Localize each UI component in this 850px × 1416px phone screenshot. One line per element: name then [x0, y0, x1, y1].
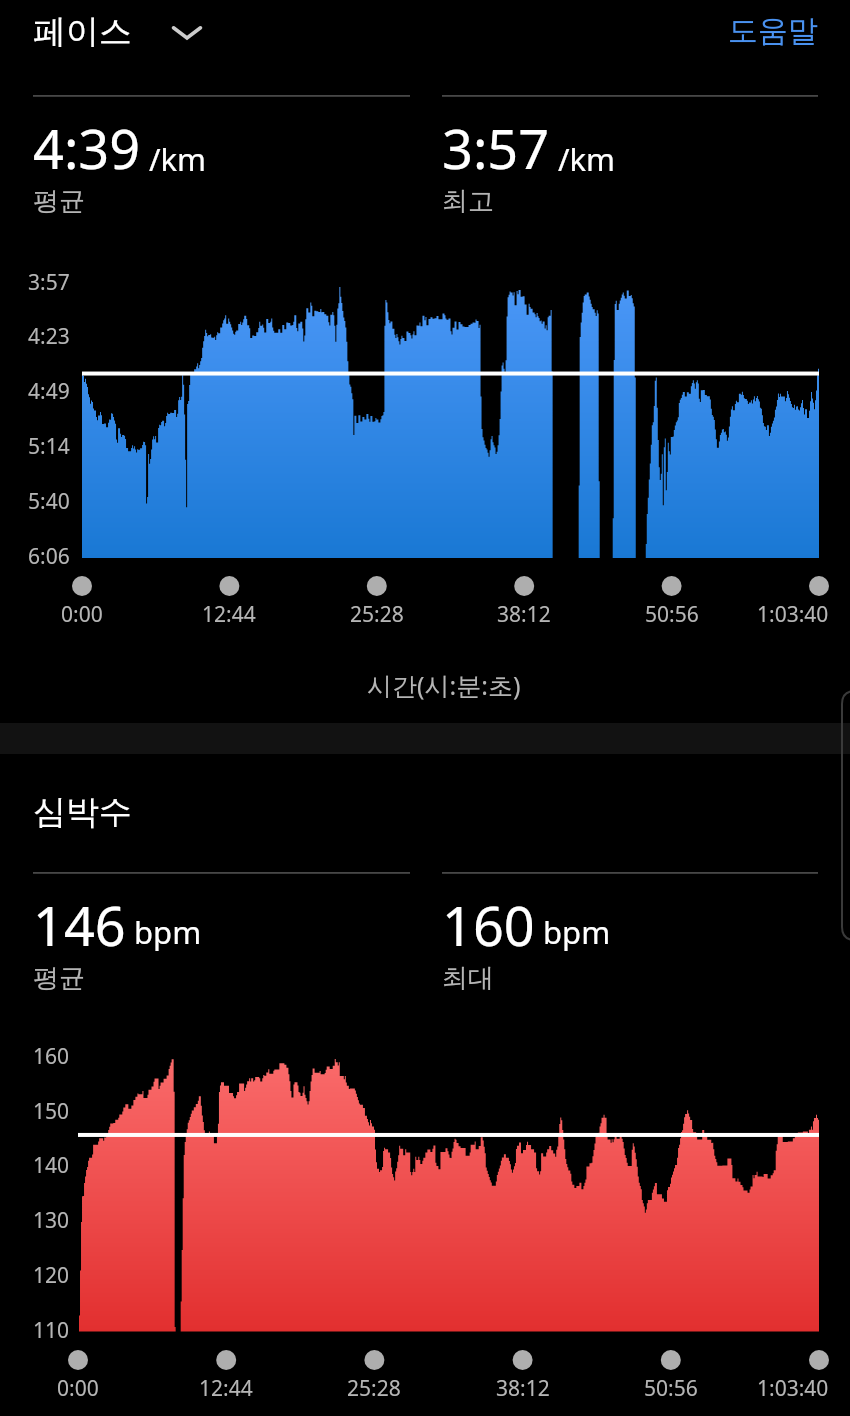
staticText: 0:00: [57, 1374, 99, 1403]
staticText: 평균: [33, 962, 85, 995]
staticText: bpm: [543, 911, 611, 953]
staticText: 0:00: [61, 600, 103, 629]
staticText: 140: [33, 1151, 70, 1180]
staticText: 150: [33, 1097, 70, 1126]
button[interactable]: Pace chart: [0, 72, 850, 722]
staticText: 3:57: [442, 111, 550, 185]
staticText: 페이스: [33, 11, 132, 53]
staticText: 38:12: [496, 1374, 550, 1403]
button[interactable]: Heart rate chart: [0, 754, 850, 1416]
staticText: /km: [149, 138, 207, 180]
staticText: 130: [33, 1206, 70, 1235]
staticText: 160: [33, 1042, 70, 1071]
staticText: 5:14: [28, 432, 70, 461]
staticText: 38:12: [497, 600, 551, 629]
staticText: 6:06: [28, 542, 70, 571]
other: Change metric: [172, 17, 202, 47]
staticText: 도움말: [728, 12, 818, 50]
staticText: 25:28: [347, 1374, 401, 1403]
staticText: 4:49: [28, 377, 70, 406]
staticText: 25:28: [350, 600, 404, 629]
staticText: 1:03:40: [757, 1374, 829, 1403]
staticText: 50:56: [645, 600, 699, 629]
staticText: 3:57: [28, 268, 70, 297]
staticText: 최대: [442, 962, 494, 995]
staticText: 12:44: [202, 600, 256, 629]
staticText: 최고: [442, 185, 494, 218]
button[interactable]: 페이스: [21, 1, 216, 63]
staticText: 5:40: [28, 487, 70, 516]
staticText: 심박수: [33, 791, 132, 833]
staticText: 146: [33, 888, 126, 962]
button[interactable]: 도움말: [698, 7, 818, 55]
staticText: bpm: [134, 911, 202, 953]
staticText: 4:39: [33, 111, 141, 185]
staticText: 160: [442, 888, 535, 962]
staticText: 12:44: [199, 1374, 253, 1403]
staticText: 110: [33, 1316, 70, 1345]
staticText: 시간(시:분:초): [367, 668, 521, 702]
staticText: 평균: [33, 185, 85, 218]
staticText: 50:56: [644, 1374, 698, 1403]
staticText: 120: [33, 1261, 70, 1290]
staticText: /km: [558, 138, 616, 180]
staticText: 4:23: [28, 322, 70, 351]
staticText: 1:03:40: [757, 600, 829, 629]
